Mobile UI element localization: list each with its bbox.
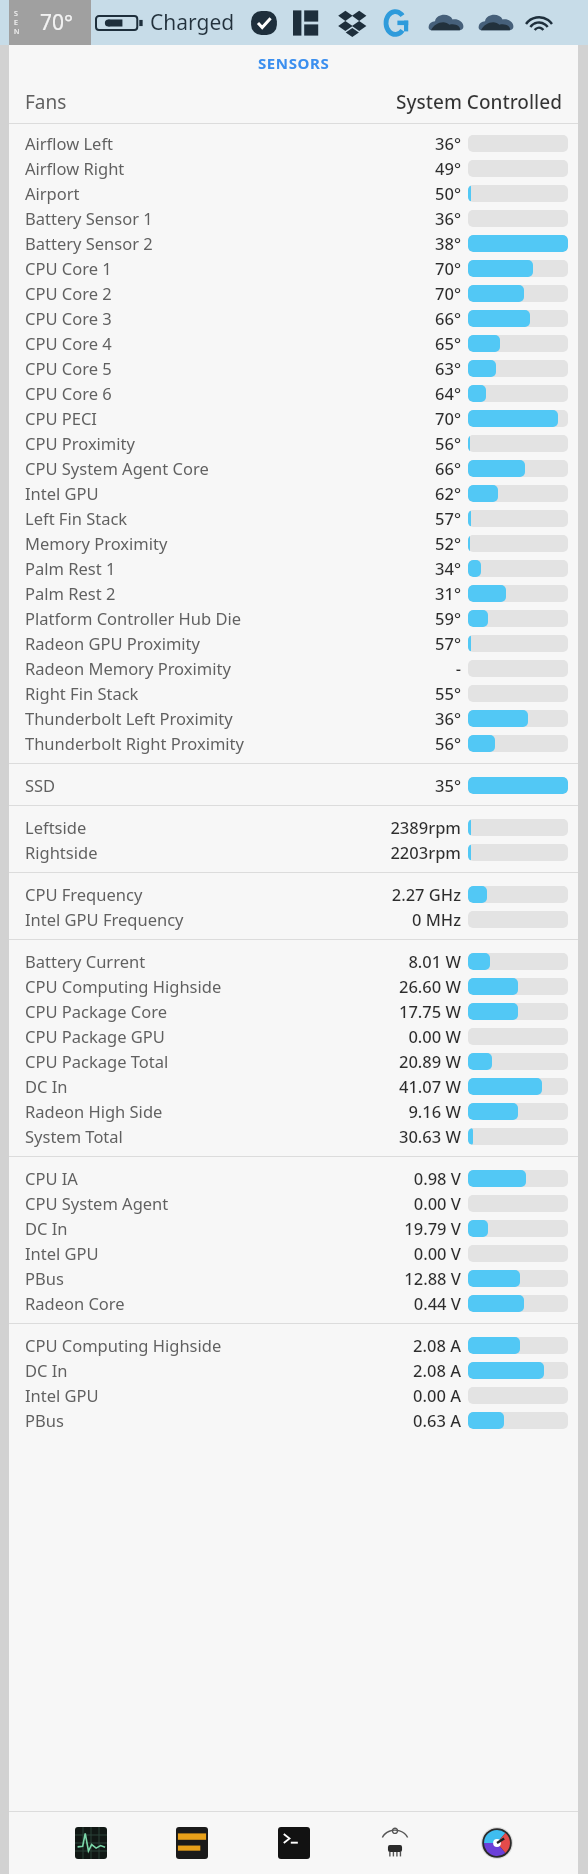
staticText: Charged [150,8,235,37]
button[interactable]: CPU Core 4 [9,330,578,355]
button[interactable]: CPU Package GPU [9,1023,578,1048]
button[interactable]: Thunderbolt Left Proximity [9,705,578,730]
button[interactable]: System Total [9,1123,578,1148]
staticText: Right Fin Stack [25,682,139,704]
other: Backup [249,8,279,38]
button[interactable]: Rightside [9,839,578,864]
button[interactable]: CPU Core 2 [9,280,578,305]
button[interactable]: Platform Controller Hub Die [9,605,578,630]
staticText: 62° [435,482,461,504]
button[interactable]: CPU Computing Highside [9,973,578,998]
button[interactable]: Palm Rest 2 [9,580,578,605]
button[interactable]: DC In [9,1073,578,1098]
button[interactable]: Radeon High Side [9,1098,578,1123]
staticText: 0.98 V [413,1167,461,1189]
button[interactable]: CPU PECI [9,405,578,430]
staticText: Platform Controller Hub Die [25,607,242,629]
staticText: CPU Package Total [25,1050,169,1072]
staticText: Leftside [25,816,87,838]
button[interactable]: CPU Frequency [9,881,578,906]
staticText: 9.16 W [408,1100,461,1122]
button[interactable]: PBus [9,1407,578,1432]
staticText: 0 MHz [411,908,461,930]
staticText: 0.00 V [413,1192,461,1214]
other: Dropbox [337,8,367,38]
button[interactable]: CPU System Agent Core [9,455,578,480]
button[interactable]: Intel GPU [9,1382,578,1407]
staticText: Intel GPU Frequency [25,908,184,930]
button[interactable]: Intel GPU [9,1240,578,1265]
button[interactable]: CPU Package Total [9,1048,578,1073]
button[interactable]: Airport [9,180,578,205]
button[interactable]: Airflow Right [9,155,578,180]
button[interactable]: CPU Core 5 [9,355,578,380]
button[interactable]: Memory Proximity [9,530,578,555]
button[interactable]: DC In [9,1357,578,1382]
staticText: System Total [25,1125,123,1147]
button[interactable]: Terminal [274,1823,314,1863]
button[interactable]: Airflow Left [9,130,578,155]
staticText: 52° [435,532,461,554]
button[interactable]: PBus [9,1265,578,1290]
button[interactable]: SSD [9,772,578,797]
staticText: CPU Proximity [25,432,135,454]
button[interactable]: CPU Core 3 [9,305,578,330]
staticText: Intel GPU [25,1384,99,1406]
staticText: 0.63 A [413,1409,461,1431]
button[interactable]: Right Fin Stack [9,680,578,705]
staticText: CPU System Agent Core [25,457,209,479]
staticText: 8.01 W [408,950,461,972]
button[interactable]: Radeon Memory Proximity [9,655,578,680]
button[interactable]: Fans [9,81,578,123]
staticText: CPU Core 3 [25,307,112,329]
button[interactable]: Battery Current [9,948,578,973]
staticText: CPU Computing Highside [25,975,222,997]
staticText: DC In [25,1359,68,1381]
button[interactable]: Battery Sensor 2 [9,230,578,255]
button[interactable]: Alerts [172,1823,212,1863]
button[interactable]: Radeon GPU Proximity [9,630,578,655]
staticText: 2.08 A [413,1334,461,1356]
button[interactable]: Sensors menu [9,0,91,45]
button[interactable]: Graphs [71,1823,111,1863]
button[interactable]: Radeon Core [9,1290,578,1315]
staticText: 0.44 V [413,1292,461,1314]
staticText: Airport [25,182,80,204]
button[interactable]: CPU Proximity [9,430,578,455]
staticText: CPU Computing Highside [25,1334,222,1356]
button[interactable]: Battery Sensor 1 [9,205,578,230]
button[interactable]: Sensors [375,1823,415,1863]
staticText: 0.00 V [413,1242,461,1264]
button[interactable]: CPU System Agent [9,1190,578,1215]
button[interactable]: Intel GPU Frequency [9,906,578,931]
button[interactable]: Thunderbolt Right Proximity [9,730,578,755]
staticText: CPU PECI [25,407,97,429]
button[interactable]: CPU Package Core [9,998,578,1023]
button[interactable]: Intel GPU [9,480,578,505]
staticText: SENSORS [258,53,330,73]
other: Wi-Fi [527,11,551,35]
staticText: 2389rpm [390,816,461,838]
button[interactable]: CPU IA [9,1165,578,1190]
staticText: 12.88 V [404,1267,461,1289]
staticText: CPU Core 2 [25,282,112,304]
staticText: 31° [435,582,461,604]
staticText: 41.07 W [398,1075,461,1097]
button[interactable]: CPU Computing Highside [9,1332,578,1357]
staticText: CPU Package Core [25,1000,167,1022]
button[interactable]: DC In [9,1215,578,1240]
staticText: Palm Rest 2 [25,582,116,604]
staticText: 0.00 W [408,1025,461,1047]
staticText: 35° [435,774,461,796]
staticText: 38° [435,232,461,254]
button[interactable]: CPU Core 1 [9,255,578,280]
other: Logitech G Hub [383,8,413,38]
button[interactable]: Left Fin Stack [9,505,578,530]
staticText: Intel GPU [25,482,99,504]
staticText: CPU Core 6 [25,382,112,404]
button[interactable]: CPU Core 6 [9,380,578,405]
button[interactable]: Leftside [9,814,578,839]
button[interactable]: Palm Rest 1 [9,555,578,580]
staticText: 66° [435,457,461,479]
button[interactable]: iStat Menus [477,1823,517,1863]
